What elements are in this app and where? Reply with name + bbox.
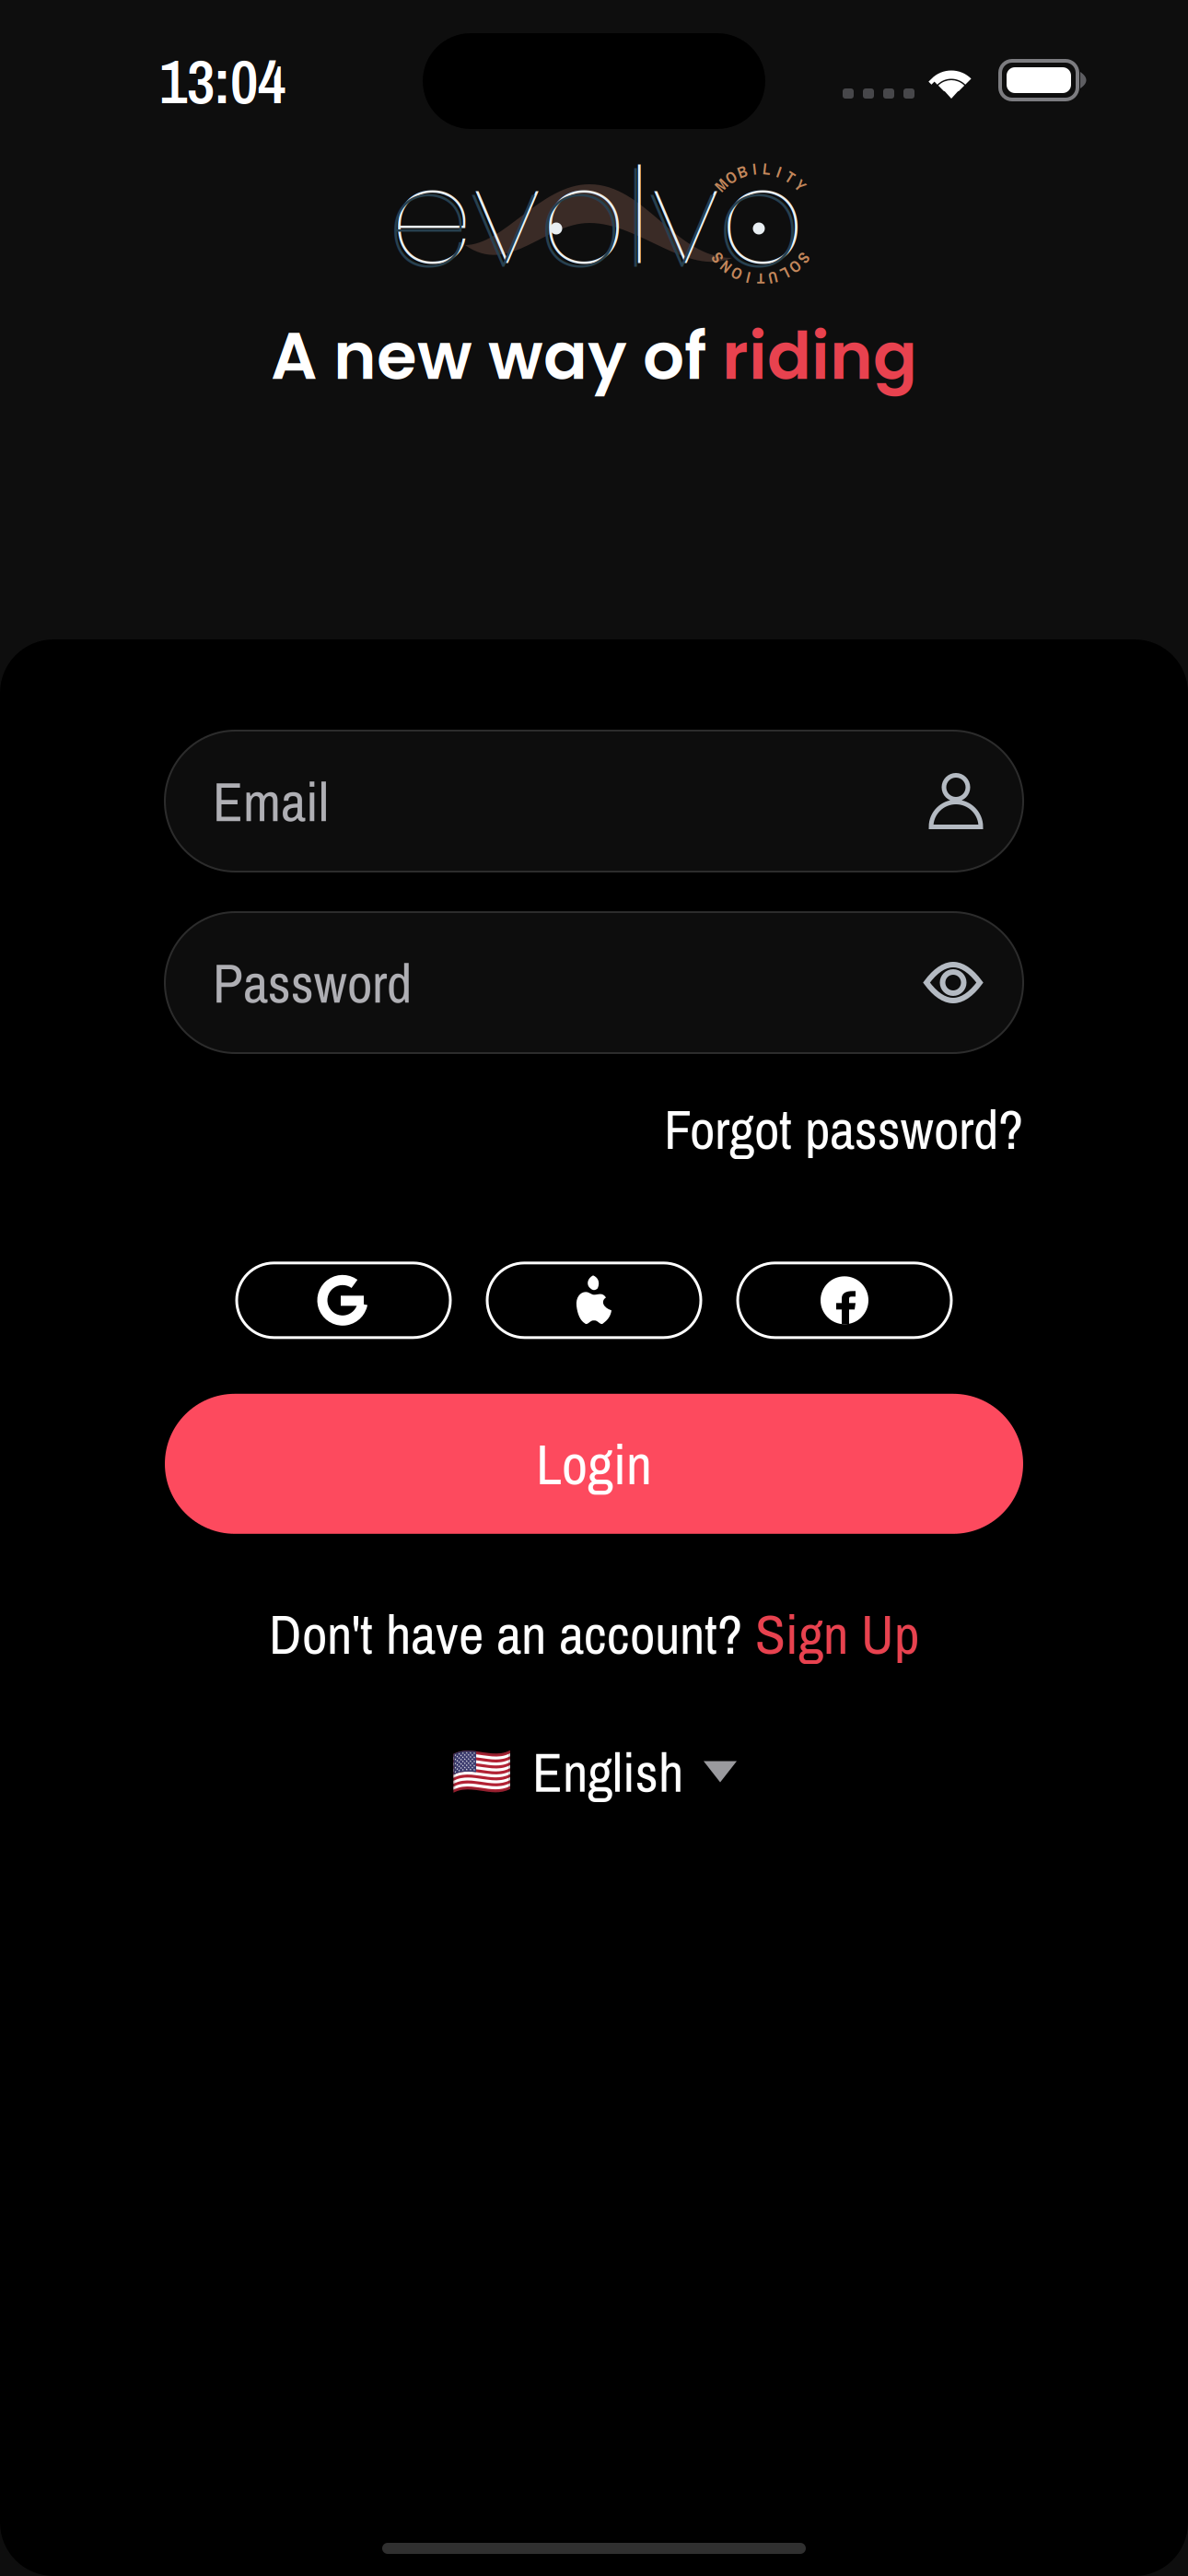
staticText: O bbox=[756, 158, 766, 179]
staticText: S bbox=[757, 158, 765, 179]
staticText: riding bbox=[722, 310, 917, 402]
staticText: Password bbox=[213, 945, 412, 1020]
staticText: evolvo bbox=[386, 127, 802, 313]
button[interactable]: 🇺🇸 bbox=[451, 1734, 737, 1809]
staticText: evolvo bbox=[390, 124, 805, 309]
staticText: 13:04 bbox=[159, 40, 285, 122]
staticText: Email bbox=[213, 764, 329, 838]
staticText: English bbox=[532, 1734, 683, 1809]
staticText: Forgot password? bbox=[664, 1092, 1023, 1166]
button[interactable]: Sign Up bbox=[755, 1596, 919, 1671]
staticText: B bbox=[756, 158, 765, 179]
staticText: O bbox=[756, 158, 766, 179]
staticText: Login bbox=[536, 1426, 652, 1502]
staticText: L bbox=[757, 158, 765, 179]
staticText: 🇺🇸 bbox=[451, 1743, 512, 1801]
button[interactable]: Login bbox=[165, 1394, 1023, 1534]
button[interactable]: Forgot password? bbox=[664, 1092, 1023, 1166]
staticText: U bbox=[756, 158, 765, 179]
button[interactable]: Sign in with Google bbox=[237, 1263, 450, 1338]
staticText: O bbox=[756, 158, 766, 179]
button[interactable]: Sign in with Apple bbox=[487, 1263, 701, 1338]
staticText: M bbox=[755, 158, 766, 179]
button[interactable]: Sign in with Facebook bbox=[738, 1263, 951, 1338]
staticText: L bbox=[757, 158, 765, 179]
staticText: T bbox=[757, 158, 765, 179]
staticText: N bbox=[756, 158, 765, 179]
staticText: S bbox=[757, 158, 765, 179]
staticText: Don't have an account? bbox=[269, 1596, 755, 1671]
staticText: T bbox=[757, 158, 765, 179]
staticText: Sign Up bbox=[755, 1596, 919, 1671]
staticText: A new way of bbox=[271, 310, 722, 402]
staticText: Y bbox=[757, 158, 765, 179]
